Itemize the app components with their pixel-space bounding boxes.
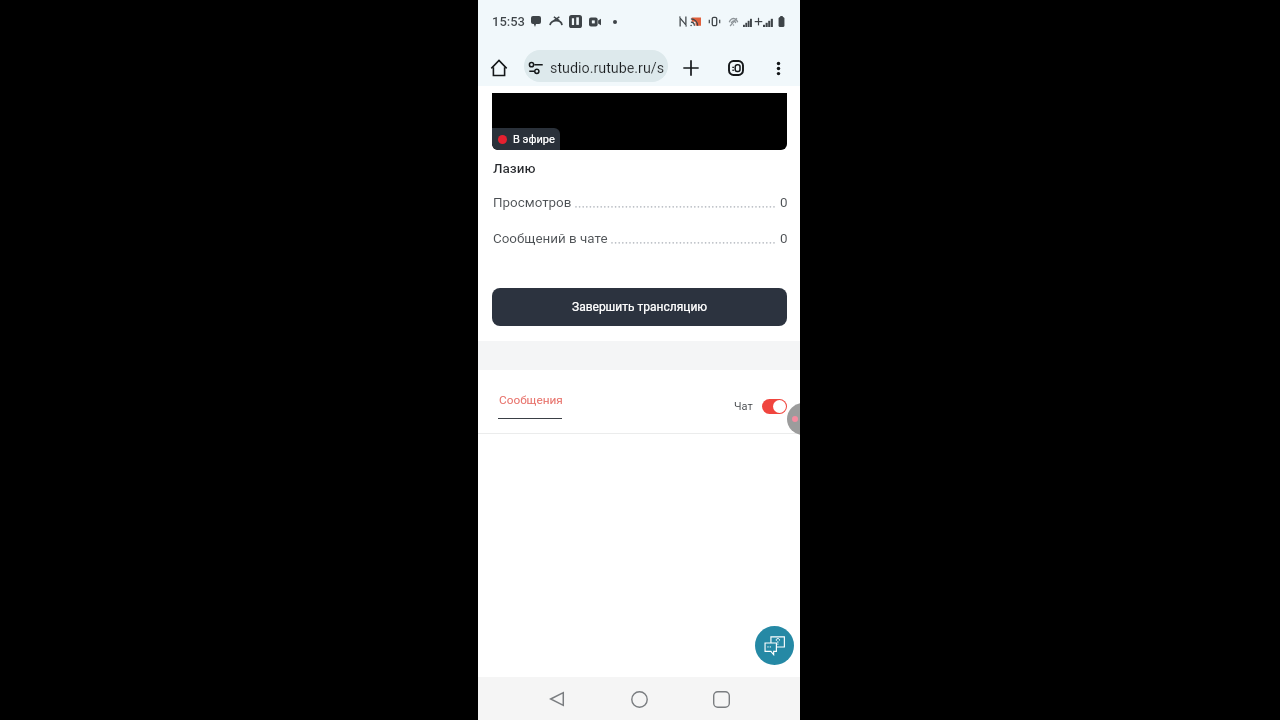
button[interactable]: Сообщения — [498, 393, 564, 419]
staticText: Просмотров — [493, 195, 572, 211]
button[interactable]: Chat settings — [787, 403, 800, 435]
button[interactable]: Home — [618, 678, 660, 720]
button[interactable]: Recents — [700, 678, 742, 720]
button[interactable]: Support chat — [755, 626, 794, 665]
button[interactable]: More options — [763, 53, 793, 83]
staticText: 15:53 — [492, 14, 526, 29]
button[interactable]: Home — [484, 53, 514, 83]
staticText: В эфире — [513, 133, 555, 146]
staticText: Лазию — [493, 160, 536, 176]
staticText: Завершить трансляцию — [572, 300, 708, 314]
staticText: studio.rutube.ru/s — [550, 60, 665, 77]
button[interactable]: Завершить трансляцию — [492, 288, 787, 326]
button[interactable]: New tab — [676, 53, 706, 83]
staticText: 0 — [780, 231, 788, 247]
staticText: Чат — [734, 400, 753, 413]
staticText: 0 — [780, 195, 788, 211]
button[interactable]: Tabs — [721, 53, 751, 83]
button[interactable]: Back — [536, 678, 578, 720]
button[interactable]: Чат — [734, 399, 787, 414]
button[interactable]: studio.rutube.ru/s — [524, 50, 668, 82]
staticText: Сообщения — [499, 393, 563, 407]
staticText: Сообщений в чате — [493, 231, 608, 247]
